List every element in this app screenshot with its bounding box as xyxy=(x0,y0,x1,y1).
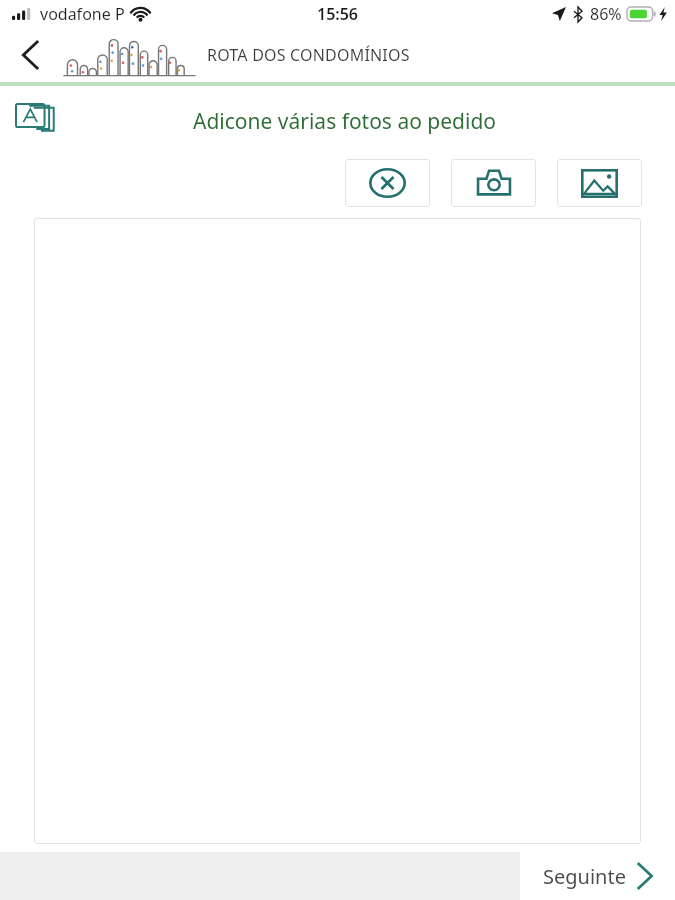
button[interactable]: Back xyxy=(8,33,52,77)
button[interactable]: Seguinte xyxy=(520,852,675,900)
staticText: ROTA DOS CONDOMÍNIOS xyxy=(207,44,410,66)
button[interactable]: Clear xyxy=(345,159,430,207)
button[interactable]: Camera xyxy=(451,159,536,207)
staticText: Seguinte xyxy=(543,863,626,890)
staticText: Adicone várias fotos ao pedido xyxy=(193,107,497,136)
staticText: 15:56 xyxy=(317,3,359,25)
staticText: vodafone P xyxy=(40,3,125,25)
staticText: 86% xyxy=(590,3,622,25)
button[interactable]: Photos xyxy=(14,101,64,141)
button[interactable]: Gallery xyxy=(557,159,642,207)
